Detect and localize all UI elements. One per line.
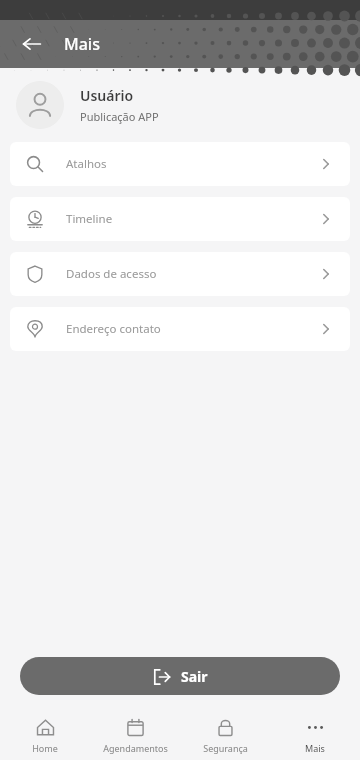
staticText: Segurança [203,742,248,754]
staticText: Mais [64,33,100,55]
button[interactable]: Timeline [10,197,350,241]
button[interactable]: Dados de acesso [10,252,350,296]
staticText: Endereço contato [66,321,161,337]
button[interactable]: Atalhos [10,142,350,186]
button[interactable]: Endereço contato [10,307,350,351]
staticText: Atalhos [66,156,107,172]
button[interactable]: Sair [20,657,340,695]
button[interactable]: Segurança [180,712,270,760]
staticText: Publicação APP [80,109,159,124]
staticText: Sair [181,667,208,686]
button[interactable]: Agendamentos [90,712,180,760]
staticText: Mais [305,742,325,754]
staticText: Agendamentos [103,742,168,754]
button[interactable]: Usuário [0,68,360,142]
button[interactable]: Home [0,712,90,760]
button[interactable]: Mais [270,712,360,760]
staticText: Dados de acesso [66,266,157,282]
staticText: Usuário [80,86,134,105]
staticText: Timeline [66,211,113,227]
staticText: Home [32,742,58,754]
button[interactable]: Voltar [12,24,52,64]
